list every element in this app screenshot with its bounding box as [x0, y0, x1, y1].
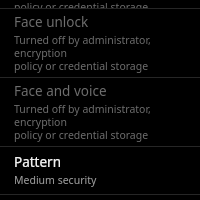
staticText: Turned off by administrator, encryption …	[14, 102, 192, 142]
staticText: Face and voice	[14, 82, 107, 100]
staticText: policy or credential storage	[14, 0, 149, 8]
staticText: Pattern	[14, 153, 62, 171]
staticText: Face unlock	[14, 13, 89, 31]
staticText: Turned off by administrator, encryption …	[14, 33, 192, 73]
button[interactable]: Face and voice	[0, 78, 200, 146]
staticText: Medium security	[14, 173, 97, 187]
button[interactable]: policy or credential storage	[0, 0, 200, 8]
button[interactable]: Face unlock	[0, 9, 200, 77]
button[interactable]: Pattern	[0, 147, 200, 194]
